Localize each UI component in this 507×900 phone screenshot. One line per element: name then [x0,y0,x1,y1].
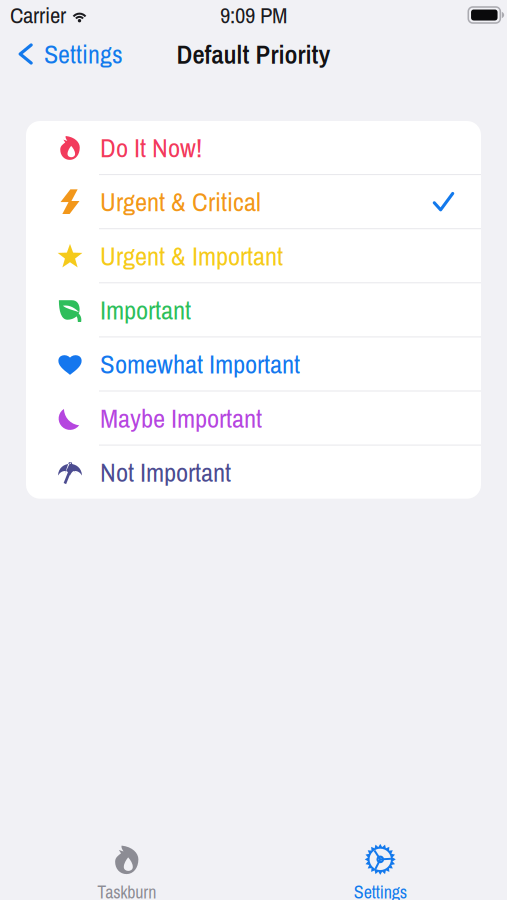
staticText: Not Important [100,454,231,490]
button[interactable]: Urgent & Critical [26,175,481,228]
button[interactable]: Somewhat Important [26,337,481,390]
button[interactable]: Taskburn [0,838,253,900]
staticText: 9:09 PM [220,0,287,30]
staticText: Carrier [10,0,66,30]
staticText: Maybe Important [100,400,262,436]
button[interactable]: Urgent & Important [26,229,481,282]
staticText: Taskburn [97,880,156,900]
staticText: Settings [44,36,123,71]
button[interactable]: Do It Now! [26,121,481,174]
staticText: Important [100,292,191,328]
staticText: Do It Now! [100,130,202,165]
button[interactable]: Settings [0,29,123,78]
button[interactable]: Not Important [26,446,481,499]
button[interactable]: Maybe Important [26,391,481,445]
staticText: Urgent & Important [100,238,283,274]
button[interactable]: Important [26,283,481,336]
staticText: Urgent & Critical [100,184,261,220]
button[interactable]: Settings [253,838,507,900]
staticText: Somewhat Important [100,346,300,382]
staticText: Default Priority [176,36,330,72]
staticText: Settings [354,880,407,900]
